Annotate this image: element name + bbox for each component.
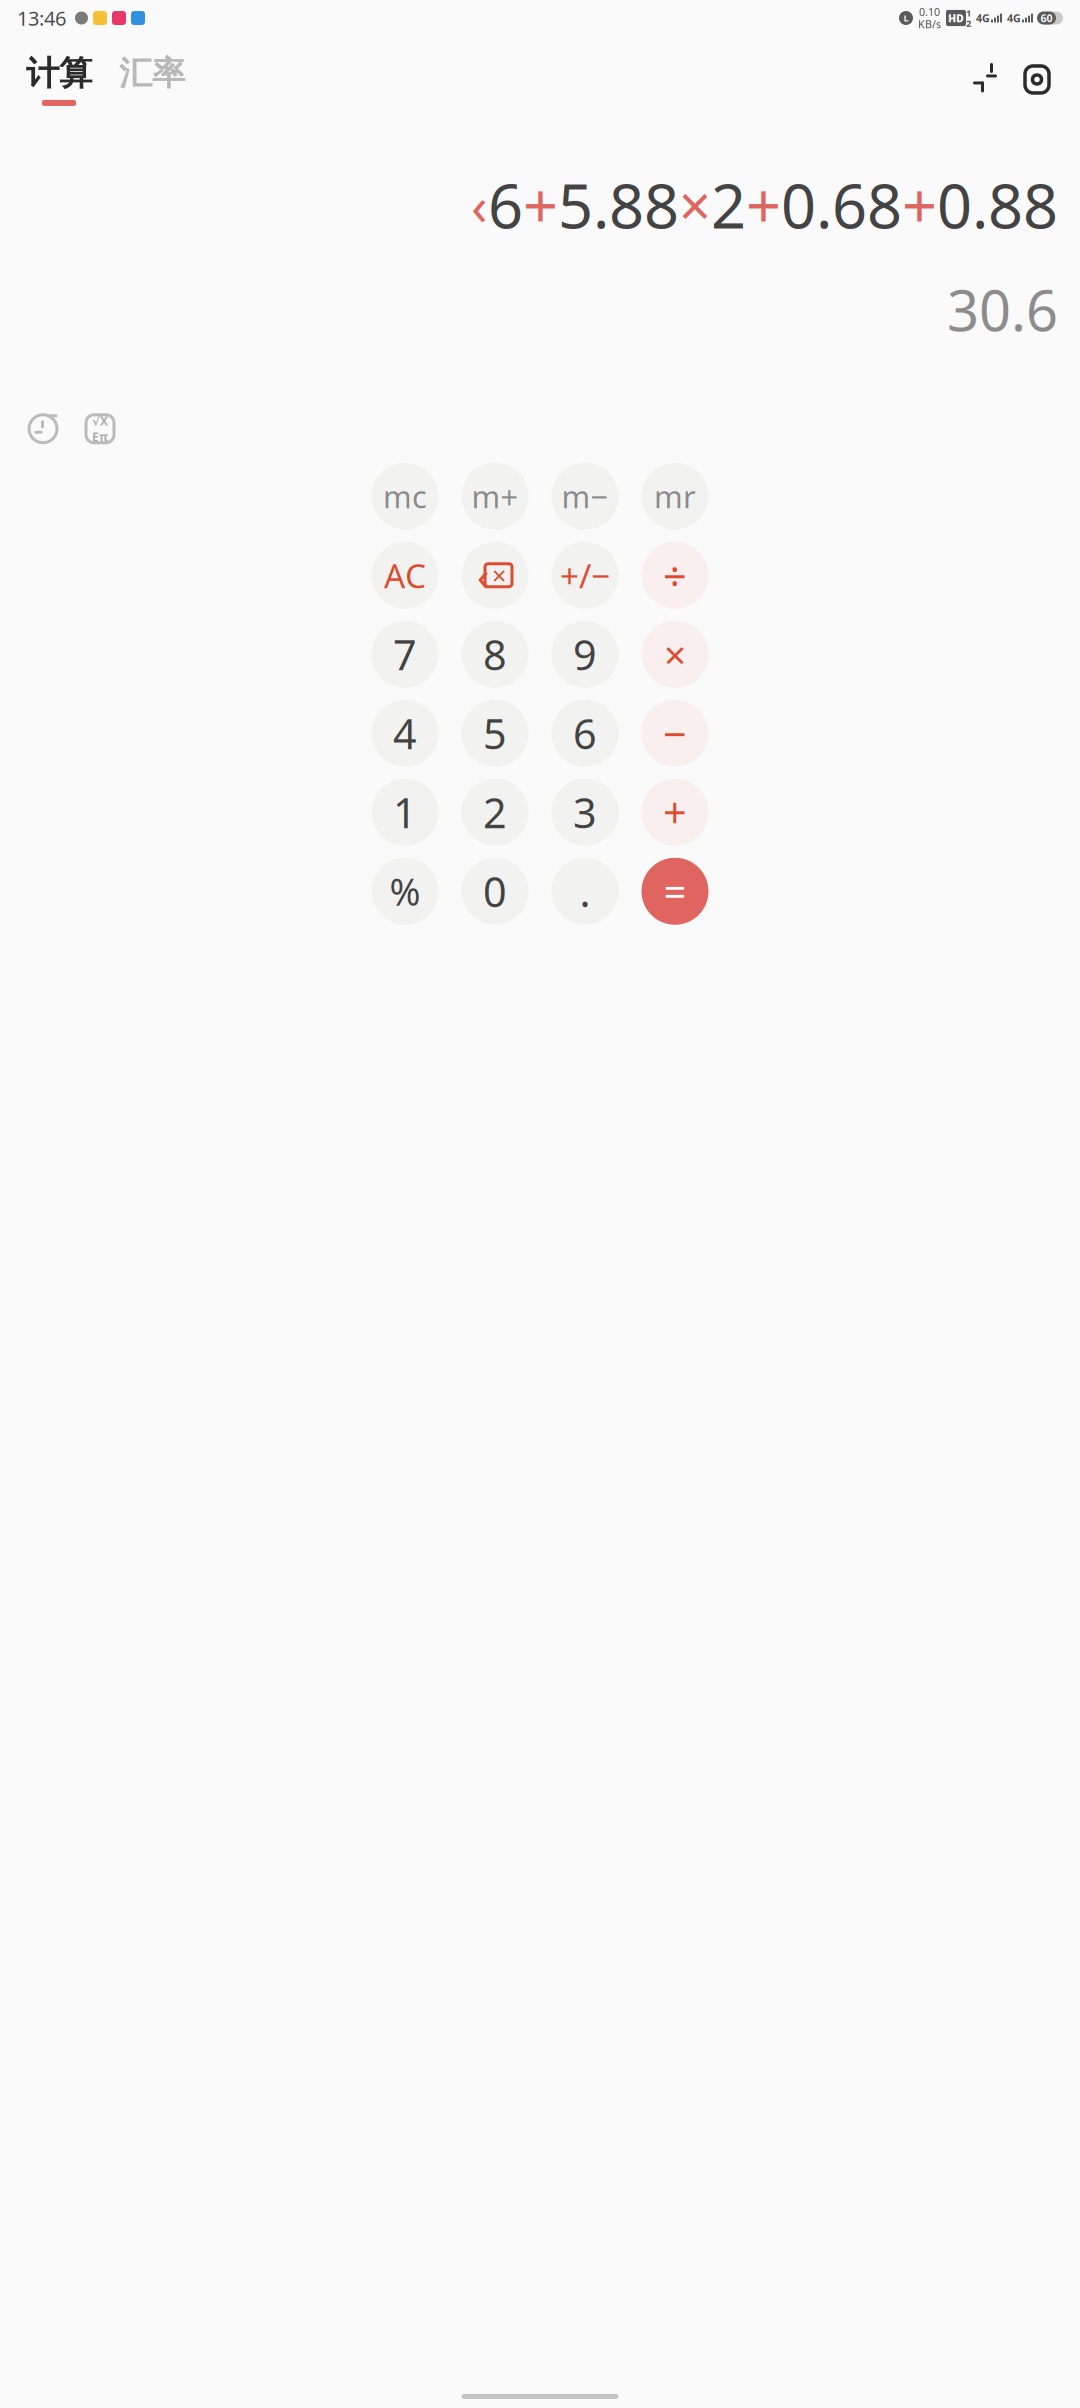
- staticText: 6: [488, 164, 523, 245]
- staticText: 计算: [26, 53, 92, 94]
- staticText: HD: [948, 11, 964, 25]
- staticText: ×: [679, 167, 711, 242]
- staticText: 5: [483, 706, 507, 761]
- staticText: 9: [573, 627, 597, 682]
- button[interactable]: History: [23, 409, 63, 449]
- button[interactable]: ×: [461, 542, 528, 609]
- staticText: 2: [711, 164, 746, 245]
- staticText: +: [663, 785, 687, 840]
- button[interactable]: =: [641, 858, 708, 925]
- staticText: 7: [393, 627, 417, 682]
- staticText: Eπ: [92, 429, 108, 445]
- button[interactable]: 8: [461, 621, 528, 688]
- button[interactable]: ÷: [641, 542, 708, 609]
- staticText: +: [523, 164, 558, 245]
- button[interactable]: 5: [461, 700, 528, 767]
- staticText: 4G: [976, 11, 990, 25]
- button[interactable]: 4: [371, 700, 438, 767]
- staticText: +: [746, 164, 781, 245]
- button[interactable]: −: [641, 700, 708, 767]
- button[interactable]: 1: [371, 779, 438, 846]
- staticText: 13:46: [17, 5, 66, 31]
- staticText: ‹: [471, 169, 488, 240]
- staticText: 0.88: [937, 164, 1058, 245]
- staticText: 6: [573, 706, 597, 761]
- button[interactable]: ×: [641, 621, 708, 688]
- staticText: m+: [471, 476, 518, 517]
- button[interactable]: 2: [461, 779, 528, 846]
- button[interactable]: .: [551, 858, 618, 925]
- button[interactable]: mc: [371, 463, 438, 530]
- button[interactable]: 6: [551, 700, 618, 767]
- button[interactable]: 0: [461, 858, 528, 925]
- staticText: KB/s: [918, 17, 941, 31]
- staticText: 30.6: [947, 272, 1058, 347]
- staticText: 60: [1040, 11, 1052, 25]
- staticText: .: [579, 864, 590, 919]
- button[interactable]: 汇率: [119, 53, 185, 106]
- staticText: ‹: [477, 549, 489, 602]
- button[interactable]: Collapse: [968, 62, 1002, 96]
- staticText: ×: [492, 558, 506, 592]
- button[interactable]: 7: [371, 621, 438, 688]
- button[interactable]: Scientific: [80, 409, 120, 449]
- staticText: m−: [561, 476, 608, 517]
- staticText: 4: [393, 706, 417, 761]
- button[interactable]: +: [641, 779, 708, 846]
- staticText: ×: [664, 629, 686, 680]
- staticText: 0.68: [781, 164, 902, 245]
- button[interactable]: m−: [551, 463, 618, 530]
- staticText: =: [663, 865, 686, 918]
- staticText: −: [663, 706, 687, 761]
- staticText: +: [902, 164, 937, 245]
- button[interactable]: m+: [461, 463, 528, 530]
- staticText: 3: [573, 785, 597, 840]
- staticText: AC: [384, 553, 426, 597]
- staticText: 1: [966, 7, 971, 19]
- button[interactable]: AC: [371, 542, 438, 609]
- staticText: √X: [92, 413, 108, 429]
- staticText: 4G: [1007, 11, 1021, 25]
- staticText: mr: [654, 476, 696, 517]
- staticText: ÷: [663, 548, 687, 603]
- button[interactable]: +/−: [551, 542, 618, 609]
- staticText: 0.10: [919, 5, 940, 19]
- button[interactable]: %: [371, 858, 438, 925]
- staticText: 2: [483, 785, 507, 840]
- staticText: 1: [393, 785, 417, 840]
- button[interactable]: 9: [551, 621, 618, 688]
- staticText: %: [389, 866, 420, 916]
- staticText: 汇率: [119, 53, 185, 94]
- button[interactable]: mr: [641, 463, 708, 530]
- staticText: mc: [383, 476, 427, 517]
- staticText: L: [903, 12, 908, 24]
- staticText: +/−: [560, 553, 610, 597]
- staticText: 8: [483, 627, 507, 682]
- staticText: 2: [966, 17, 971, 29]
- staticText: 5.88: [558, 164, 679, 245]
- button[interactable]: 计算: [26, 53, 92, 106]
- button[interactable]: Settings: [1020, 62, 1054, 96]
- button[interactable]: 3: [551, 779, 618, 846]
- staticText: 0: [483, 864, 507, 919]
